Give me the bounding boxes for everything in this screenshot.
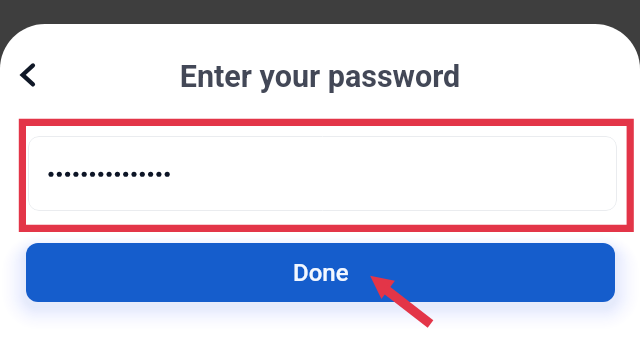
button[interactable]: Done [26,243,615,302]
button[interactable]: Password [28,136,617,211]
button[interactable]: Back [6,53,50,97]
staticText: Done [293,259,349,287]
staticText: Enter your password [0,59,640,95]
